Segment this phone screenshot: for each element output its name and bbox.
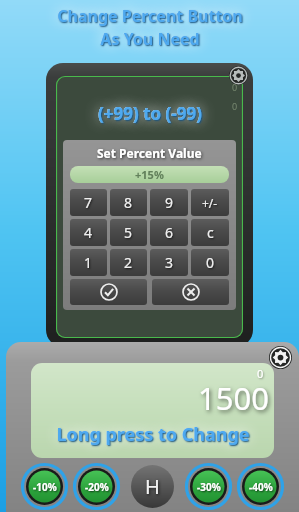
staticText: 0 bbox=[232, 81, 238, 93]
button[interactable]: 6 bbox=[150, 219, 188, 246]
staticText: Set Percent Value bbox=[97, 145, 202, 161]
staticText: 6 bbox=[165, 223, 174, 242]
staticText: (+99) to (-99) bbox=[98, 102, 202, 125]
staticText: 1500 bbox=[198, 377, 269, 419]
button[interactable]: Settings bbox=[268, 345, 292, 369]
button[interactable]: c bbox=[191, 219, 229, 246]
staticText: As You Need bbox=[100, 28, 200, 50]
staticText: H bbox=[145, 473, 160, 500]
staticText: 4 bbox=[84, 223, 93, 242]
button[interactable]: H bbox=[131, 465, 174, 508]
button[interactable]: Accept bbox=[70, 279, 147, 305]
button[interactable]: -10% bbox=[21, 463, 68, 510]
button[interactable]: 1 bbox=[70, 249, 107, 276]
staticText: 2 bbox=[124, 253, 133, 272]
button[interactable]: 3 bbox=[150, 249, 188, 276]
staticText: -30% bbox=[197, 480, 221, 494]
button[interactable]: Cancel bbox=[152, 279, 229, 305]
button[interactable]: -30% bbox=[185, 463, 232, 510]
button[interactable]: Settings bbox=[228, 65, 248, 85]
staticText: 0 bbox=[232, 100, 238, 112]
staticText: +/- bbox=[202, 195, 218, 211]
staticText: Long press to Change bbox=[56, 422, 250, 447]
staticText: 9 bbox=[165, 193, 174, 212]
button[interactable]: +15% bbox=[70, 166, 229, 183]
button[interactable]: 9 bbox=[150, 189, 188, 216]
staticText: Change Percent Button bbox=[57, 5, 243, 27]
button[interactable]: 0 bbox=[191, 249, 229, 276]
staticText: +15% bbox=[135, 167, 164, 182]
staticText: 0 bbox=[206, 253, 215, 272]
staticText: Long press to Change bbox=[56, 422, 250, 447]
button[interactable]: 2 bbox=[110, 249, 147, 276]
staticText: 7 bbox=[84, 193, 93, 212]
button[interactable]: +/- bbox=[191, 189, 229, 216]
staticText: -40% bbox=[249, 480, 273, 494]
button[interactable]: -20% bbox=[73, 463, 120, 510]
staticText: -20% bbox=[85, 480, 109, 494]
staticText: c bbox=[207, 223, 214, 242]
staticText: 5 bbox=[124, 223, 133, 242]
staticText: 3 bbox=[165, 253, 174, 272]
staticText: 8 bbox=[124, 193, 133, 212]
staticText: Change Percent Button bbox=[57, 5, 243, 27]
button[interactable]: -40% bbox=[237, 463, 284, 510]
button[interactable]: 8 bbox=[110, 189, 147, 216]
button[interactable]: 4 bbox=[70, 219, 107, 246]
button[interactable]: 0 bbox=[31, 363, 274, 458]
staticText: As You Need bbox=[100, 28, 200, 50]
staticText: (+99) to (-99) bbox=[98, 102, 202, 125]
staticText: 1 bbox=[84, 253, 93, 272]
staticText: -10% bbox=[33, 480, 57, 494]
button[interactable]: 7 bbox=[70, 189, 107, 216]
button[interactable]: 5 bbox=[110, 219, 147, 246]
staticText: 0 bbox=[257, 366, 264, 381]
